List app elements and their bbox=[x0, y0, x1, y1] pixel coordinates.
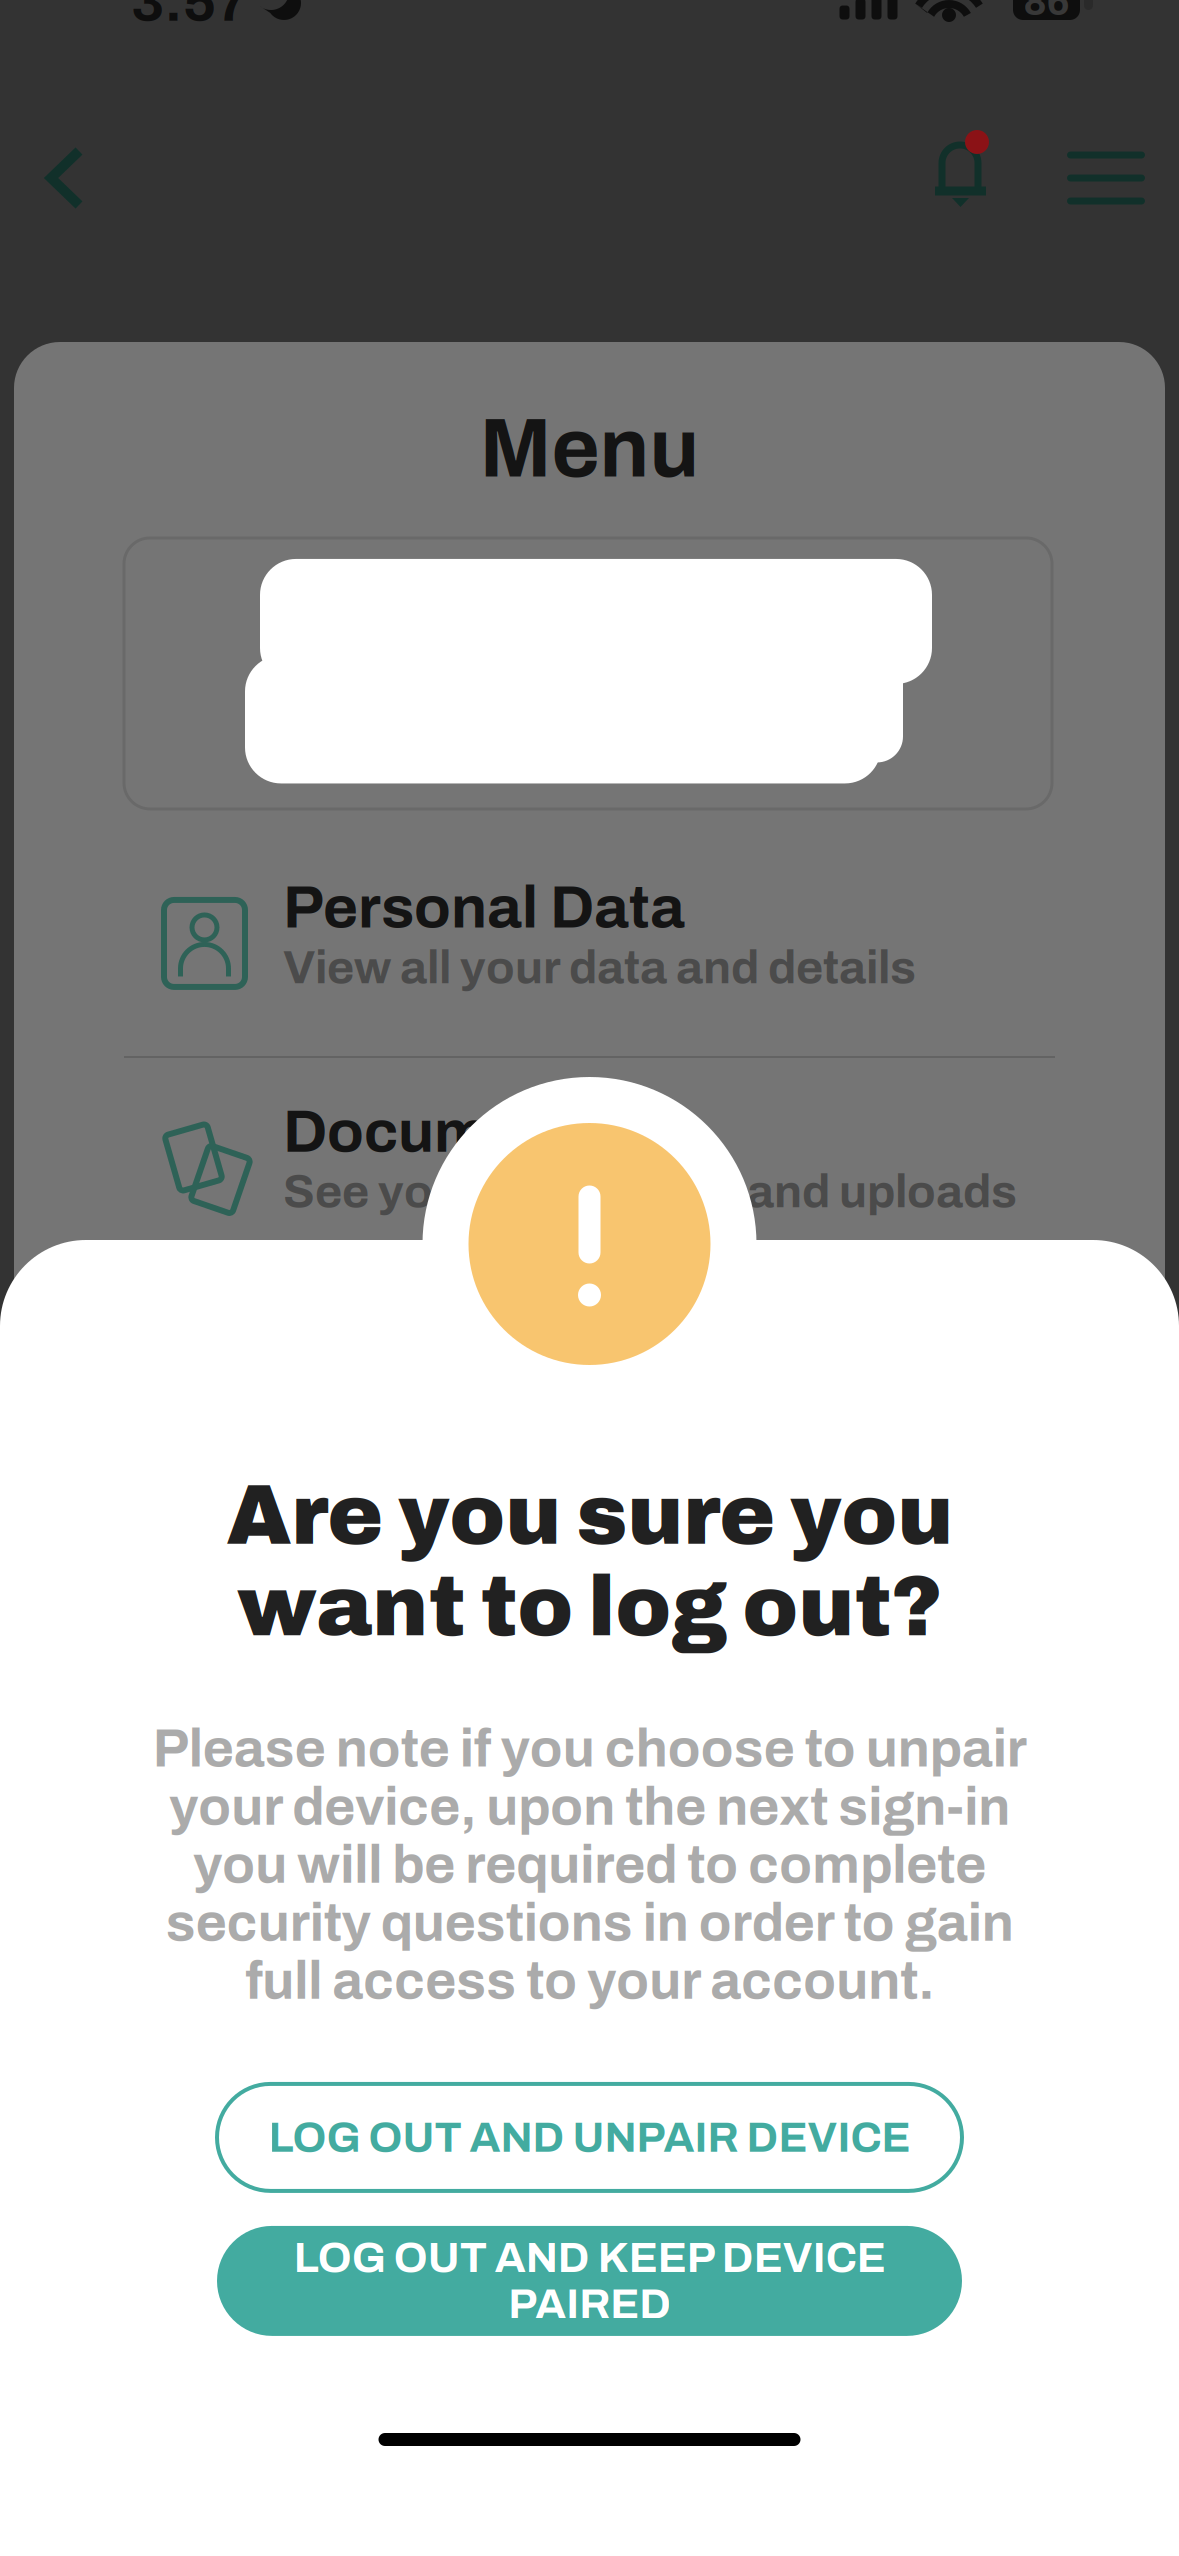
staticText: 3:57 bbox=[131, 0, 249, 32]
button[interactable]: Personal Data bbox=[14, 875, 1165, 993]
button[interactable]: Back bbox=[0, 116, 121, 240]
staticText: Documents bbox=[283, 1099, 612, 1164]
staticText: Personal Data bbox=[283, 875, 685, 940]
button[interactable]: Documents bbox=[14, 1099, 1165, 1217]
staticText: 86 bbox=[1023, 0, 1069, 23]
staticText: Please note if you choose to unpair your… bbox=[152, 1720, 1026, 2010]
button[interactable]: LOG OUT AND KEEP DEVICE PAIRED bbox=[217, 2226, 962, 2336]
button[interactable]: Notifications bbox=[927, 116, 1057, 240]
staticText: View all your data and details bbox=[283, 942, 916, 993]
staticText: LOG OUT AND UNPAIR DEVICE bbox=[268, 2114, 910, 2161]
staticText: LOG OUT AND KEEP DEVICE PAIRED bbox=[293, 2234, 885, 2327]
button[interactable]: LOG OUT AND UNPAIR DEVICE bbox=[217, 2084, 962, 2191]
staticText: Are you sure you want to log out? bbox=[226, 1470, 953, 1653]
staticText: Menu bbox=[479, 404, 699, 494]
staticText: See your documents and uploads bbox=[283, 1166, 1017, 1217]
button[interactable]: Open menu bbox=[1057, 116, 1179, 240]
